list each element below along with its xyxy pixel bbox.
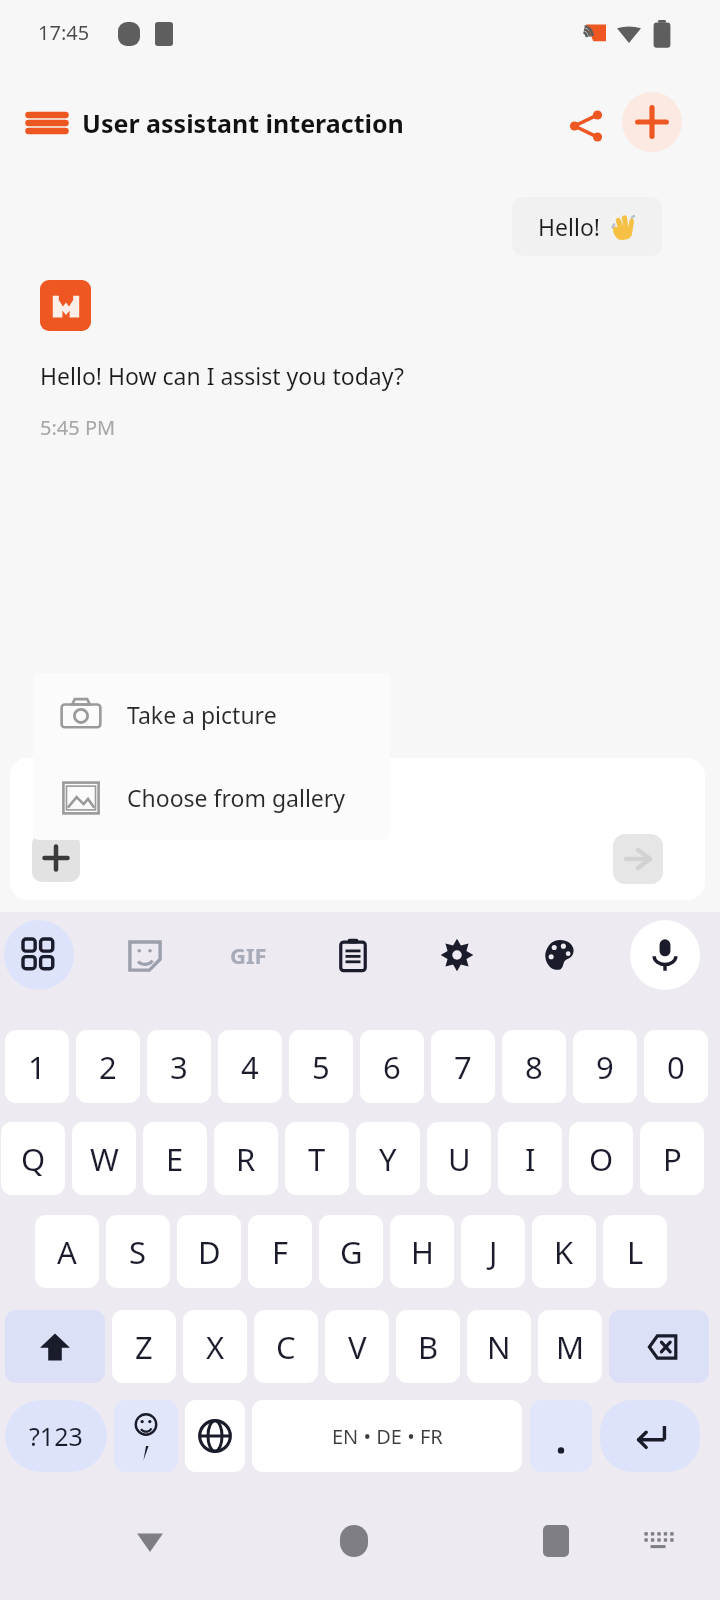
button[interactable]: H [390, 1215, 454, 1288]
staticText: 1 [28, 1046, 46, 1088]
button[interactable]: Theme [525, 920, 595, 990]
button[interactable]: 2 [76, 1030, 140, 1103]
button[interactable]: B [396, 1310, 460, 1383]
staticText: 9 [596, 1046, 614, 1088]
button[interactable]: W [72, 1122, 136, 1195]
staticText: EN • DE • FR [332, 1423, 443, 1450]
button[interactable]: P [640, 1122, 704, 1195]
staticText: L [627, 1231, 644, 1273]
staticText: J [489, 1231, 498, 1273]
staticText: H [411, 1231, 434, 1273]
button[interactable]: Y [356, 1122, 420, 1195]
staticText: D [198, 1231, 221, 1273]
staticText: Y [379, 1138, 397, 1180]
button[interactable]: S [106, 1215, 170, 1288]
button[interactable]: ?123 [5, 1400, 107, 1472]
staticText: X [206, 1326, 225, 1368]
button[interactable]: L [603, 1215, 667, 1288]
button[interactable]: 1 [5, 1030, 69, 1103]
staticText: Choose from gallery [127, 782, 346, 813]
button[interactable]: Period [530, 1400, 592, 1472]
staticText: N [487, 1326, 511, 1368]
button[interactable]: 0 [644, 1030, 708, 1103]
button[interactable]: 4 [218, 1030, 282, 1103]
staticText: 0 [667, 1046, 685, 1088]
button[interactable]: Settings [422, 920, 492, 990]
button[interactable]: Keyboard modes [4, 920, 74, 990]
staticText: E [166, 1138, 184, 1180]
staticText: O [589, 1138, 614, 1180]
button[interactable]: Enter [600, 1400, 700, 1472]
button[interactable]: Take a picture [33, 673, 390, 756]
button[interactable]: New chat [622, 92, 682, 152]
button[interactable]: 5 [289, 1030, 353, 1103]
button[interactable]: U [427, 1122, 491, 1195]
button[interactable]: Voice input [630, 920, 700, 990]
button[interactable]: Home [322, 1509, 386, 1573]
staticText: 17:45 [38, 19, 90, 46]
button[interactable]: E [143, 1122, 207, 1195]
staticText: S [129, 1231, 147, 1273]
button[interactable]: O [569, 1122, 633, 1195]
button[interactable]: 9 [573, 1030, 637, 1103]
staticText: V [348, 1326, 367, 1368]
button[interactable]: Clipboard [318, 920, 388, 990]
staticText: 8 [525, 1046, 543, 1088]
button[interactable]: Share [562, 102, 610, 150]
staticText: Q [21, 1138, 46, 1180]
button[interactable]: M [538, 1310, 602, 1383]
staticText: I [525, 1138, 536, 1180]
staticText: W [90, 1138, 119, 1180]
staticText: A [57, 1231, 77, 1273]
staticText: 5:45 PM [40, 414, 116, 441]
staticText: G [340, 1231, 363, 1273]
button[interactable]: Backspace [609, 1310, 709, 1383]
staticText: B [418, 1326, 439, 1368]
staticText: U [448, 1138, 471, 1180]
button[interactable]: N [467, 1310, 531, 1383]
button[interactable]: C [254, 1310, 318, 1383]
button[interactable]: Stickers [110, 920, 180, 990]
button[interactable]: 7 [431, 1030, 495, 1103]
button[interactable]: A [35, 1215, 99, 1288]
staticText: 7 [454, 1046, 472, 1088]
staticText: 5 [312, 1046, 330, 1088]
staticText: 2 [99, 1046, 117, 1088]
staticText: 6 [383, 1046, 401, 1088]
staticText: Z [135, 1326, 153, 1368]
button[interactable]: 3 [147, 1030, 211, 1103]
button[interactable]: Recent apps [524, 1509, 588, 1573]
button[interactable]: G [319, 1215, 383, 1288]
button[interactable]: Choose from gallery [33, 756, 390, 839]
button[interactable]: GIF [213, 920, 283, 990]
button[interactable]: Z [112, 1310, 176, 1383]
staticText: F [272, 1231, 289, 1273]
button[interactable]: Send [613, 834, 663, 884]
staticText: Take a picture [127, 699, 277, 730]
button[interactable]: Change language [185, 1400, 245, 1472]
staticText: R [236, 1138, 256, 1180]
button[interactable]: 8 [502, 1030, 566, 1103]
button[interactable]: 6 [360, 1030, 424, 1103]
button[interactable]: Q [1, 1122, 65, 1195]
button[interactable]: X [183, 1310, 247, 1383]
button[interactable]: R [214, 1122, 278, 1195]
button[interactable]: T [285, 1122, 349, 1195]
button[interactable]: Back [118, 1509, 182, 1573]
button[interactable]: Add attachment [32, 834, 80, 882]
button[interactable]: I [498, 1122, 562, 1195]
staticText: ?123 [29, 1419, 83, 1453]
button[interactable]: Hello! [512, 197, 662, 256]
button[interactable]: EN • DE • FR [252, 1400, 522, 1472]
button[interactable]: J [461, 1215, 525, 1288]
button[interactable]: Emoji and comma [114, 1400, 178, 1472]
button[interactable]: Shift [5, 1310, 105, 1383]
staticText: User assistant interaction [82, 106, 404, 140]
staticText: M [556, 1326, 585, 1368]
button[interactable]: K [532, 1215, 596, 1288]
button[interactable]: F [248, 1215, 312, 1288]
button[interactable]: V [325, 1310, 389, 1383]
button[interactable]: Menu [22, 98, 72, 148]
button[interactable]: Hide keyboard [626, 1509, 690, 1573]
button[interactable]: D [177, 1215, 241, 1288]
